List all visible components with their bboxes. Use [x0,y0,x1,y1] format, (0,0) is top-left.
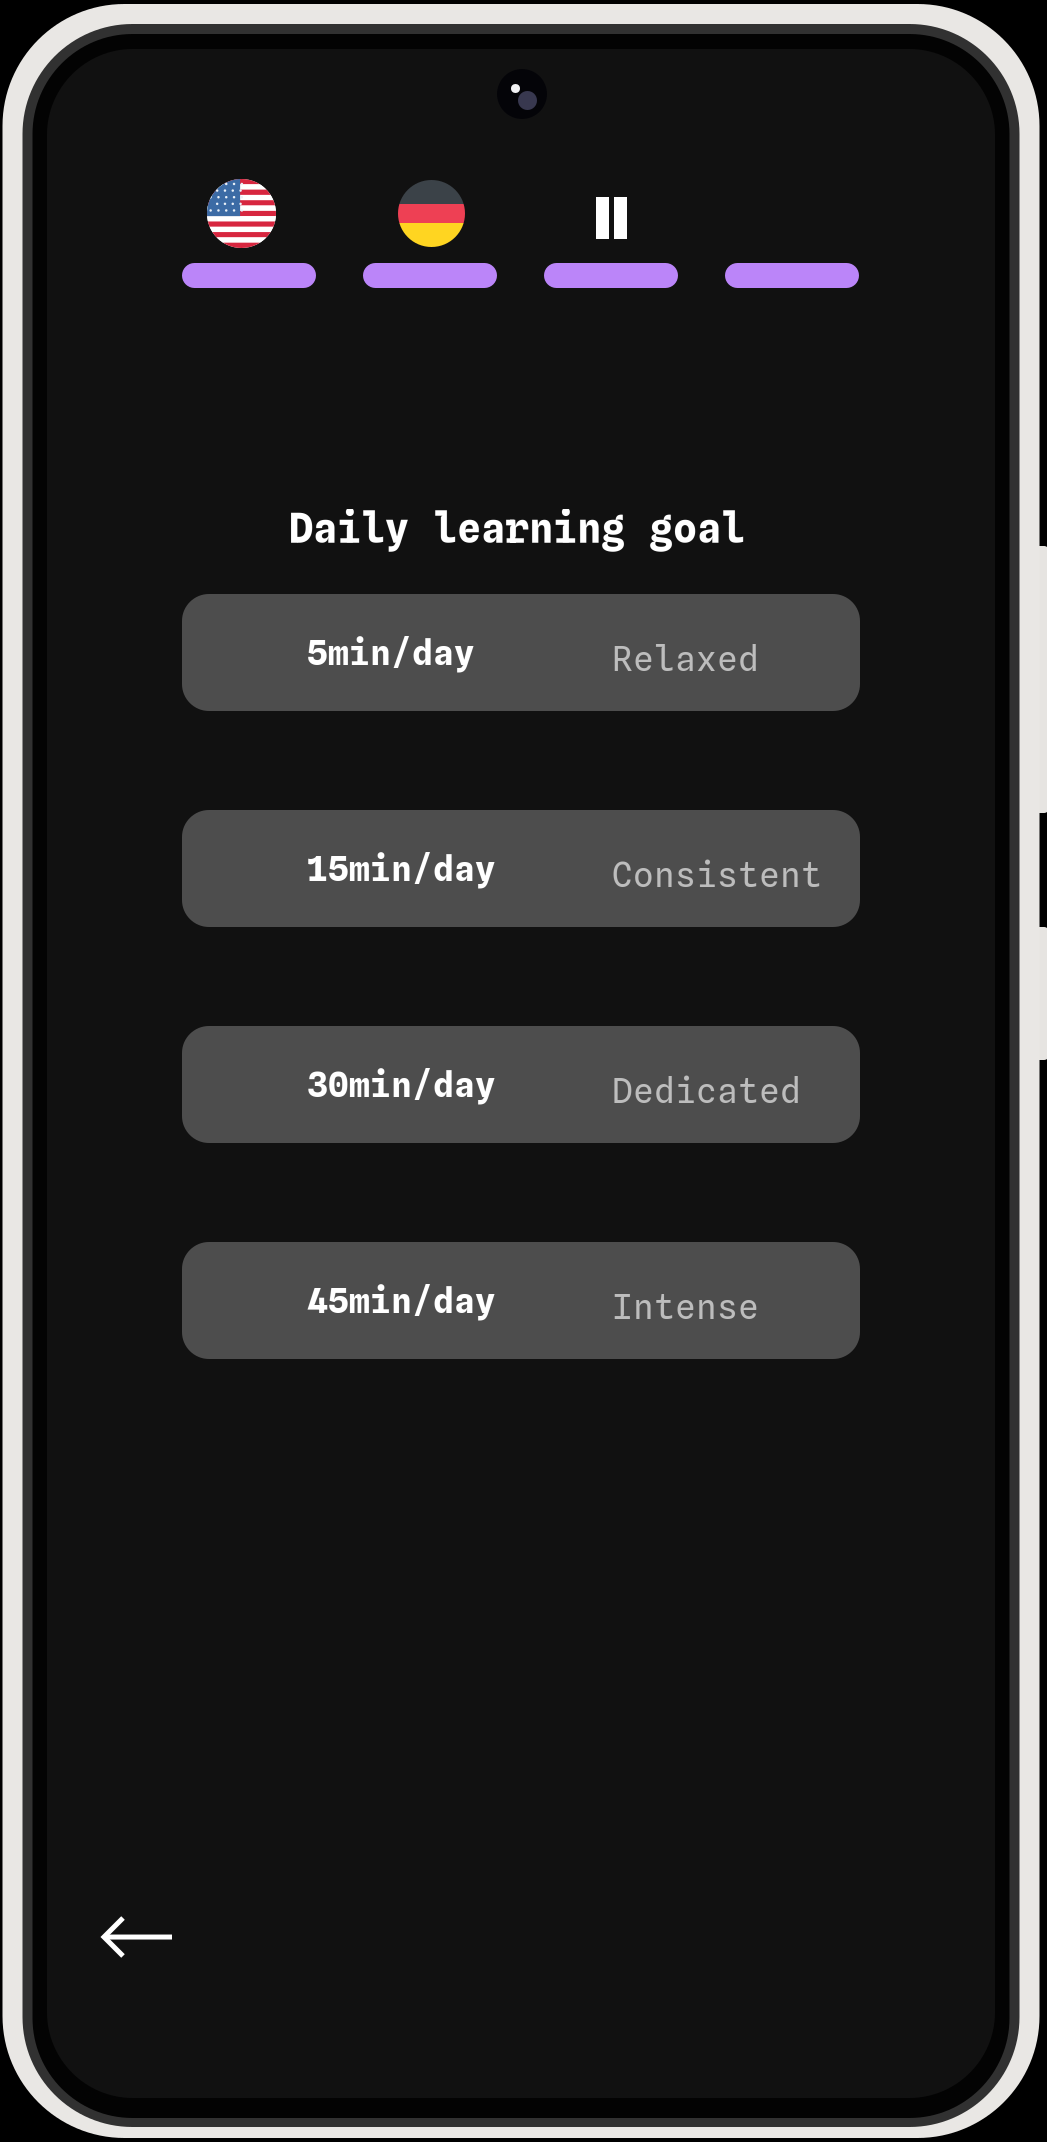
staticText: Consistent [612,854,822,895]
button[interactable]: 45min/day [182,1242,860,1359]
button[interactable]: Back [76,1892,200,1982]
button[interactable]: 15min/day [182,810,860,927]
staticText: Intense [612,1286,759,1327]
staticText: 45min/day [307,1280,496,1321]
staticText: Relaxed [612,638,759,679]
staticText: 5min/day [307,632,475,673]
staticText: Dedicated [612,1070,801,1111]
staticText: 30min/day [307,1064,496,1105]
button[interactable]: 30min/day [182,1026,860,1143]
button[interactable]: 5min/day [182,594,860,711]
staticText: Daily learning goal [289,504,745,552]
staticText: 15min/day [307,848,496,889]
